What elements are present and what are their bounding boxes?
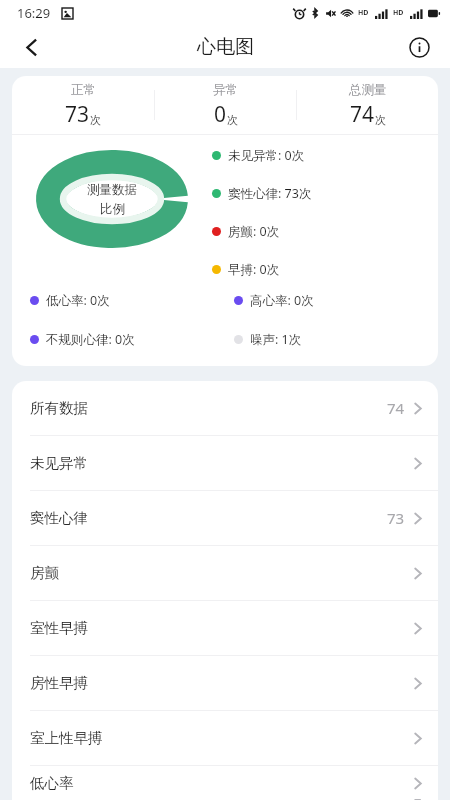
staticText: 室性早搏 (30, 619, 88, 637)
staticText: 房颤: 0次 (228, 223, 280, 240)
button[interactable]: Back (10, 26, 52, 68)
staticText: 噪声: 1次 (250, 331, 302, 348)
button[interactable]: Info (398, 26, 440, 68)
staticText: 窦性心律: 73次 (228, 185, 312, 202)
staticText: 室上性早搏 (30, 729, 103, 747)
staticText: 窦性心律 (30, 509, 88, 527)
button[interactable]: 室上性早搏 (12, 711, 438, 765)
button[interactable]: 所有数据 (12, 381, 438, 435)
button[interactable]: 未见异常 (12, 436, 438, 490)
staticText: 比例 (100, 201, 125, 217)
staticText: 0 (214, 100, 227, 129)
staticText: 未见异常: 0次 (228, 147, 305, 164)
button[interactable]: 窦性心律 (12, 491, 438, 545)
staticText: 73 (387, 508, 405, 528)
button[interactable]: 低心率 (12, 766, 438, 800)
staticText: 正常 (71, 82, 96, 98)
staticText: 次 (375, 113, 386, 127)
staticText: 74 (387, 398, 405, 418)
staticText: 未见异常 (30, 454, 88, 472)
staticText: 低心率: 0次 (46, 292, 110, 309)
staticText: 低心率 (30, 774, 74, 792)
staticText: 总测量 (349, 82, 387, 98)
staticText: 次 (90, 113, 101, 127)
staticText: HD (393, 8, 404, 18)
staticText: 异常 (213, 82, 238, 98)
button[interactable]: 室性早搏 (12, 601, 438, 655)
button[interactable]: 房性早搏 (12, 656, 438, 710)
staticText: 测量数据 (87, 182, 137, 198)
button[interactable]: 房颤 (12, 546, 438, 600)
staticText: 房性早搏 (30, 674, 88, 692)
staticText: 73 (65, 100, 90, 129)
staticText: 所有数据 (30, 399, 88, 417)
staticText: 心电图 (197, 35, 254, 59)
staticText: 不规则心律: 0次 (46, 331, 135, 348)
staticText: 早搏: 0次 (228, 261, 280, 278)
staticText: 房颤 (30, 564, 59, 582)
staticText: HD (358, 8, 369, 18)
staticText: 16:29 (17, 4, 51, 22)
staticText: 74 (350, 100, 375, 129)
staticText: 高心率: 0次 (250, 292, 314, 309)
staticText: 次 (227, 113, 238, 127)
